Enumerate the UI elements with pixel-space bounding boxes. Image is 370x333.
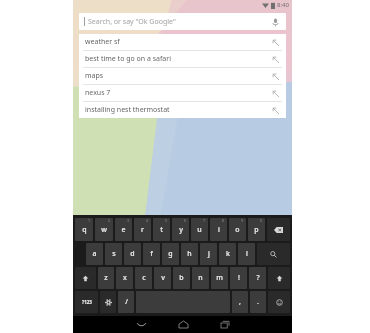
- button[interactable]: n: [192, 267, 209, 289]
- staticText: weather sf: [85, 37, 120, 47]
- button[interactable]: k: [219, 243, 236, 265]
- staticText: m: [216, 273, 223, 283]
- button[interactable]: q: [75, 218, 93, 241]
- button[interactable]: z: [98, 267, 114, 289]
- button[interactable]: Shift: [75, 267, 96, 289]
- staticText: b: [179, 273, 184, 283]
- staticText: maps: [85, 71, 104, 81]
- button[interactable]: Input settings: [100, 291, 116, 313]
- staticText: o: [235, 225, 240, 235]
- staticText: !: [238, 273, 240, 283]
- staticText: v: [161, 273, 165, 283]
- staticText: 7: [203, 218, 206, 223]
- staticText: l: [246, 249, 248, 259]
- staticText: y: [179, 225, 183, 235]
- button[interactable]: /: [118, 291, 134, 313]
- button[interactable]: i: [210, 218, 227, 241]
- staticText: 3: [127, 218, 130, 223]
- button[interactable]: Backspace: [267, 218, 290, 241]
- staticText: 8: [222, 218, 225, 223]
- staticText: nexus 7: [85, 88, 111, 98]
- staticText: a: [92, 249, 97, 259]
- staticText: z: [104, 273, 108, 283]
- button[interactable]: h: [181, 243, 198, 265]
- staticText: r: [141, 225, 144, 235]
- button[interactable]: e: [115, 218, 132, 241]
- staticText: Search, or say "Ok Google": [88, 17, 176, 27]
- button[interactable]: t: [153, 218, 170, 241]
- staticText: installing nest thermostat: [85, 105, 170, 115]
- button[interactable]: l: [238, 243, 255, 265]
- button[interactable]: best time to go on a safari: [79, 51, 286, 67]
- button[interactable]: Emoji: [268, 291, 290, 313]
- button[interactable]: Home: [162, 316, 204, 333]
- button[interactable]: Insert suggestion: [270, 105, 281, 116]
- staticText: s: [112, 249, 116, 259]
- button[interactable]: .: [250, 291, 266, 313]
- staticText: g: [168, 249, 173, 259]
- button[interactable]: a: [86, 243, 103, 265]
- button[interactable]: Insert suggestion: [270, 54, 281, 65]
- button[interactable]: installing nest thermostat: [79, 102, 286, 118]
- button[interactable]: ,: [232, 291, 248, 313]
- staticText: k: [226, 249, 230, 259]
- staticText: .: [257, 297, 259, 307]
- staticText: 1: [88, 218, 91, 223]
- button[interactable]: x: [116, 267, 133, 289]
- button[interactable]: v: [154, 267, 171, 289]
- staticText: /: [125, 297, 128, 307]
- button[interactable]: u: [191, 218, 208, 241]
- button[interactable]: !: [230, 267, 247, 289]
- staticText: j: [208, 249, 210, 259]
- button[interactable]: Insert suggestion: [270, 37, 281, 48]
- staticText: e: [121, 225, 126, 235]
- staticText: w: [101, 225, 107, 235]
- button[interactable]: Voice search: [269, 16, 281, 28]
- staticText: u: [197, 225, 202, 235]
- button[interactable]: g: [162, 243, 179, 265]
- staticText: i: [218, 225, 220, 235]
- button[interactable]: j: [200, 243, 217, 265]
- button[interactable]: c: [135, 267, 152, 289]
- staticText: n: [198, 273, 203, 283]
- staticText: 6: [184, 218, 187, 223]
- button[interactable]: o: [229, 218, 246, 241]
- staticText: best time to go on a safari: [85, 54, 171, 64]
- staticText: ,: [239, 297, 241, 307]
- button[interactable]: Insert suggestion: [270, 88, 281, 99]
- staticText: t: [160, 225, 163, 235]
- button[interactable]: nexus 7: [79, 85, 286, 101]
- button[interactable]: Shift: [268, 267, 290, 289]
- button[interactable]: r: [134, 218, 151, 241]
- button[interactable]: b: [173, 267, 190, 289]
- button[interactable]: y: [172, 218, 189, 241]
- staticText: c: [142, 273, 146, 283]
- staticText: x: [123, 273, 127, 283]
- button[interactable]: s: [105, 243, 122, 265]
- button[interactable]: weather sf: [79, 34, 286, 50]
- staticText: 4: [146, 218, 149, 223]
- button[interactable]: Back: [120, 316, 162, 333]
- staticText: ?: [256, 273, 260, 283]
- button[interactable]: m: [211, 267, 228, 289]
- staticText: f: [150, 249, 153, 259]
- button[interactable]: Recent apps: [204, 316, 246, 333]
- button[interactable]: w: [95, 218, 113, 241]
- button[interactable]: maps: [79, 68, 286, 84]
- staticText: 0: [260, 218, 263, 223]
- button[interactable]: Search: [257, 243, 290, 265]
- button[interactable]: d: [124, 243, 141, 265]
- button[interactable]: ?: [249, 267, 266, 289]
- button[interactable]: f: [143, 243, 160, 265]
- button[interactable]: ?123: [75, 291, 98, 313]
- button[interactable]: Insert suggestion: [270, 71, 281, 82]
- staticText: h: [187, 249, 192, 259]
- staticText: 8:40: [277, 1, 289, 9]
- staticText: 9: [241, 218, 244, 223]
- button[interactable]: Search, or say "Ok Google": [79, 13, 286, 30]
- staticText: 2: [108, 218, 111, 223]
- staticText: q: [82, 225, 87, 235]
- staticText: ?123: [82, 299, 92, 305]
- button[interactable]: p: [248, 218, 265, 241]
